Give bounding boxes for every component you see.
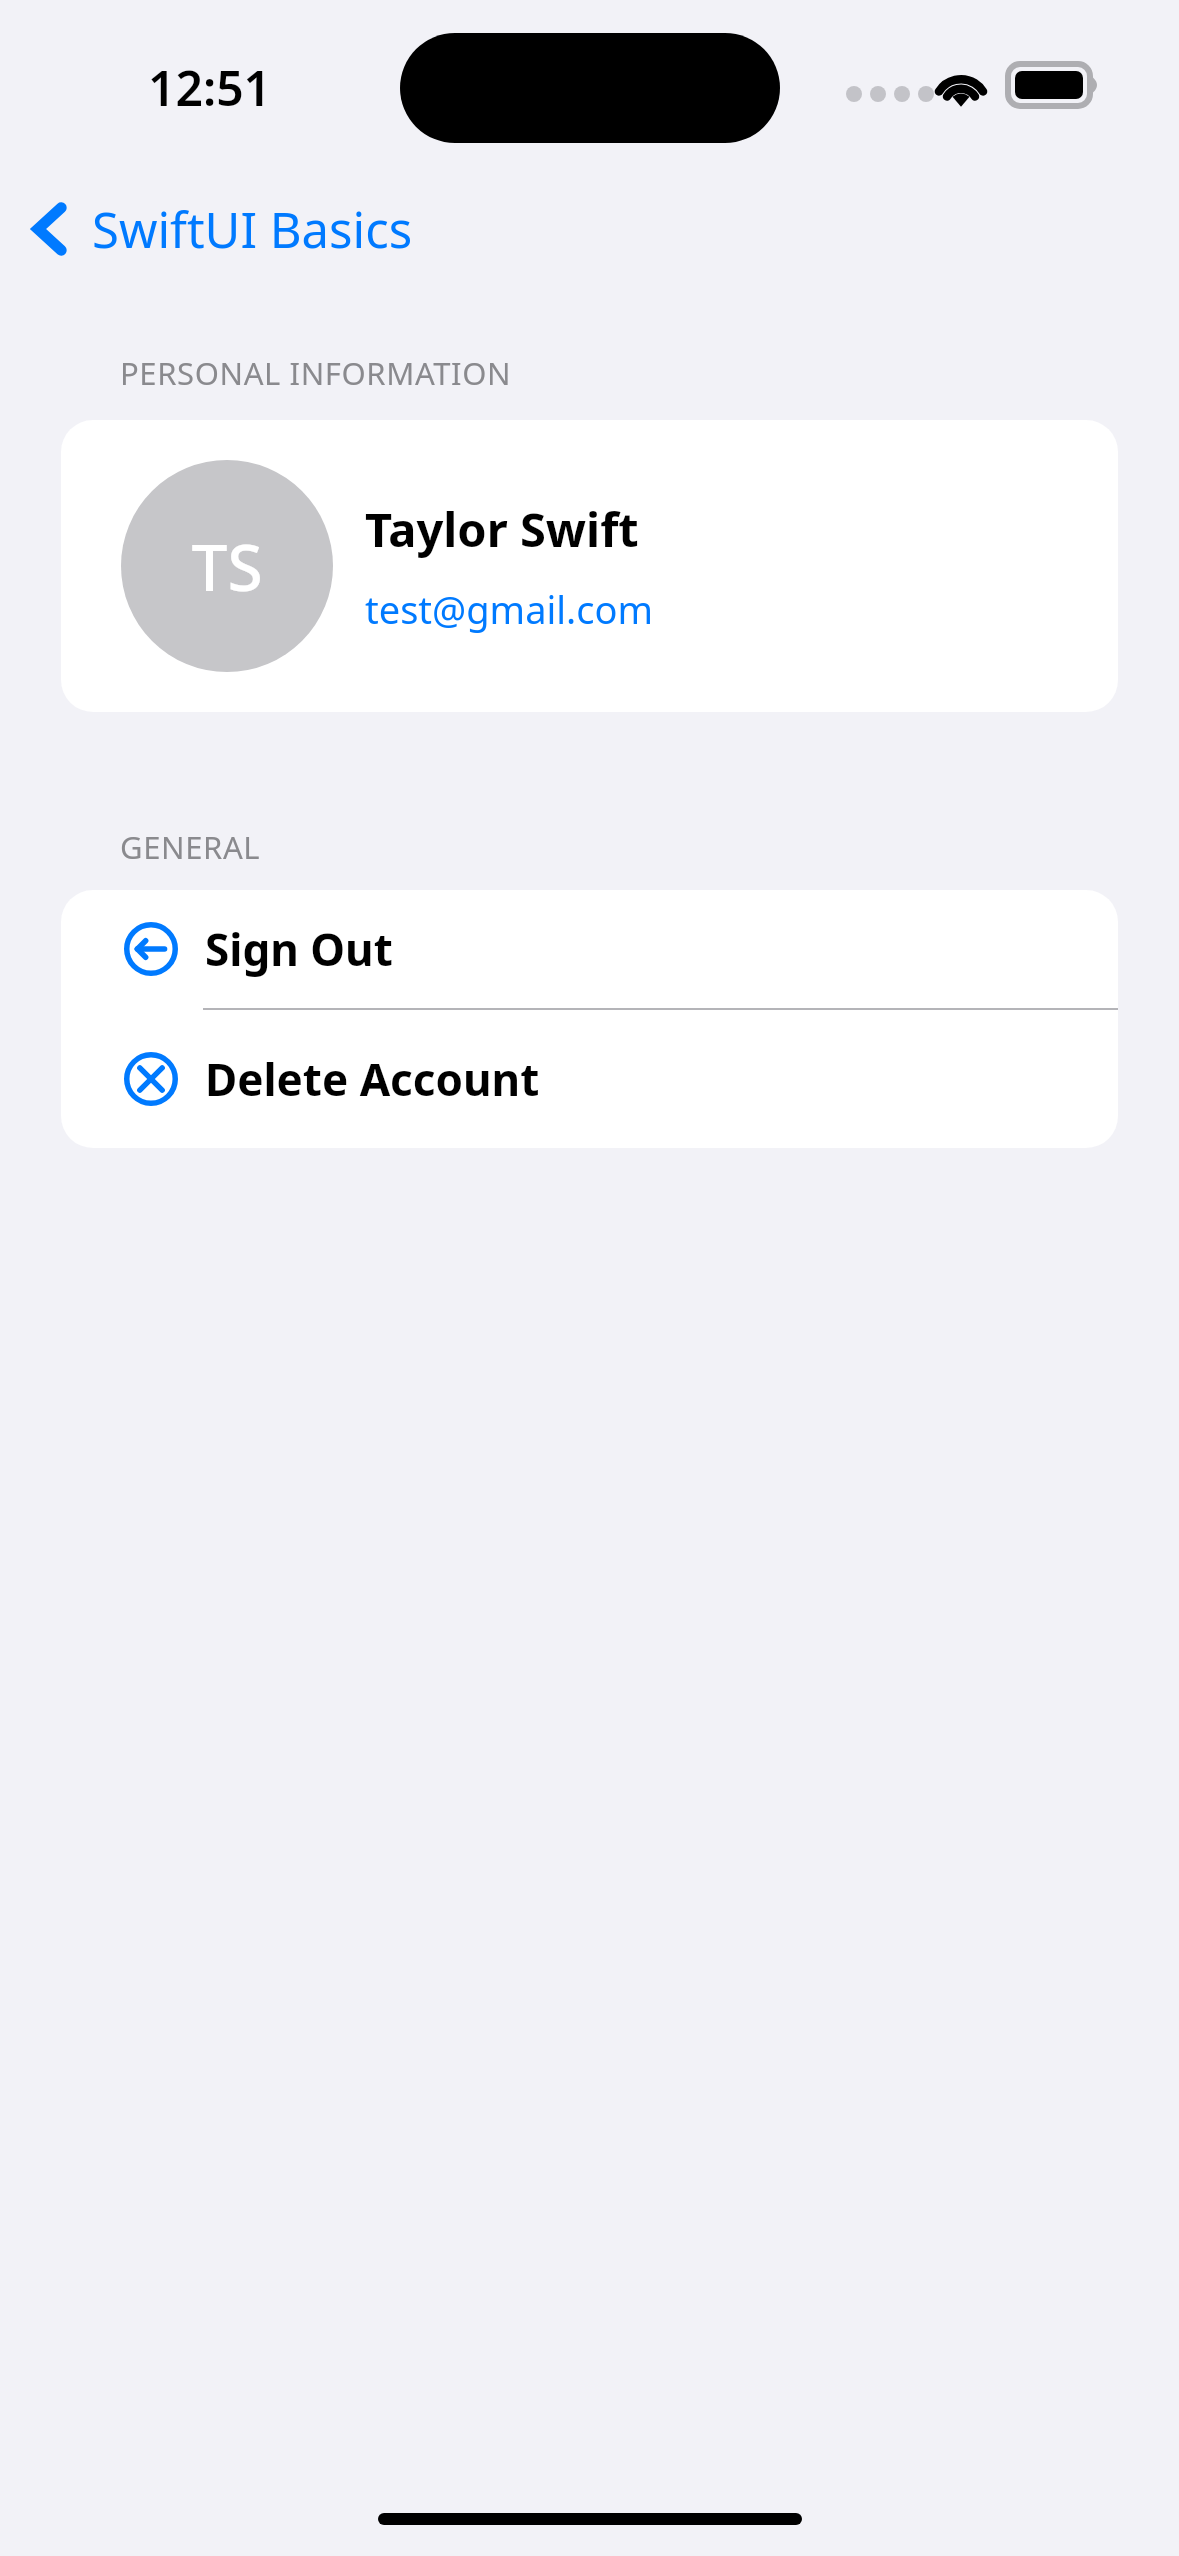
button[interactable]: SwiftUI Basics [18,185,435,273]
staticText: Delete Account [205,1049,540,1109]
button[interactable]: Delete Account [61,1010,1118,1148]
button[interactable]: TS [61,420,1118,712]
staticText: 12:51 [148,55,272,120]
staticText: test@gmail.com [365,583,654,635]
staticText: Sign Out [205,919,393,979]
other: Sign Out [124,922,178,976]
staticText: TS [191,523,263,610]
staticText: Taylor Swift [365,497,639,561]
other: Delete Account [124,1052,178,1106]
staticText: GENERAL [120,826,261,868]
staticText: SwiftUI Basics [92,196,413,263]
staticText: PERSONAL INFORMATION [120,352,512,394]
button[interactable]: Sign Out [61,890,1118,1008]
